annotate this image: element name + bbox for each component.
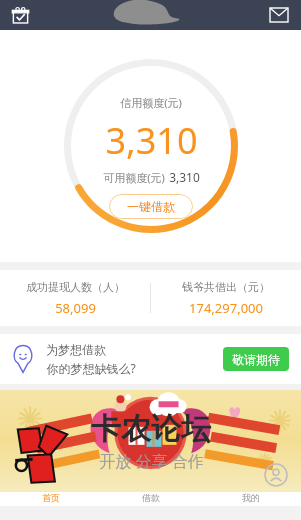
staticText: 信用额度(元): [120, 95, 182, 110]
staticText: 174,297,000: [189, 299, 263, 317]
staticText: 58,099: [55, 299, 96, 317]
button[interactable]: 敬请期待: [223, 347, 289, 371]
staticText: 为梦想借款: [46, 342, 106, 357]
staticText: 3,310: [105, 116, 198, 165]
button[interactable]: 成功提现人数（人）: [0, 280, 150, 317]
button[interactable]: Messages: [265, 1, 293, 29]
button[interactable]: 借款: [101, 492, 201, 506]
button[interactable]: 钱爷共借出（元）: [151, 280, 301, 317]
button[interactable]: 一键借款: [109, 194, 193, 219]
button[interactable]: 为梦想借款: [0, 334, 301, 384]
staticText: 你的梦想缺钱么?: [46, 360, 136, 376]
staticText: 借款: [142, 492, 160, 503]
button[interactable]: 我的: [201, 492, 301, 506]
button[interactable]: 首页: [0, 492, 101, 506]
staticText: 首页: [42, 492, 60, 503]
staticText: 成功提现人数（人）: [26, 280, 125, 294]
staticText: 3,310: [169, 169, 200, 185]
staticText: 卡农论坛: [91, 410, 211, 448]
staticText: 可用额度(元): [103, 170, 165, 185]
staticText: 钱爷共借出（元）: [182, 280, 270, 294]
button[interactable]: Gift check in: [6, 1, 34, 29]
staticText: 一键借款: [127, 199, 175, 214]
staticText: 敬请期待: [232, 352, 280, 367]
staticText: 开放 分享 合作: [99, 450, 204, 472]
staticText: 我的: [242, 492, 260, 503]
button[interactable]: 卡农论坛: [0, 390, 301, 492]
